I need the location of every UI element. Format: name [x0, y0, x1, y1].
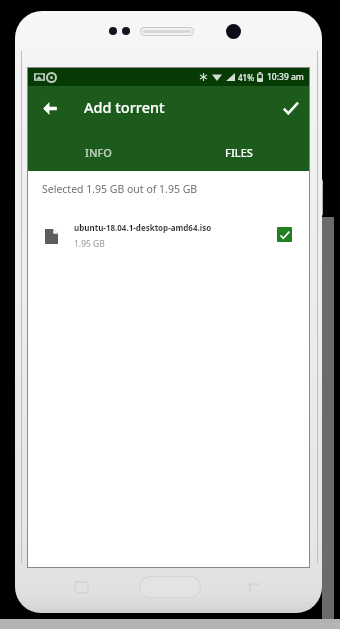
staticText: 1.95 GB — [74, 238, 105, 250]
staticText: 10:39 am — [267, 71, 304, 83]
button[interactable]: Done — [265, 88, 309, 132]
staticText: INFO — [85, 145, 112, 160]
staticText: 41% — [238, 72, 254, 83]
staticText: ubuntu-18.04.1-desktop-amd64.iso — [74, 222, 212, 233]
staticText: Selected 1.95 GB out of 1.95 GB — [42, 182, 198, 196]
button[interactable]: INFO — [28, 134, 168, 171]
staticText: Add torrent — [84, 97, 165, 117]
staticText: FILES — [225, 145, 253, 160]
button[interactable]: FILES — [168, 134, 309, 171]
button[interactable]: File selected — [277, 227, 292, 242]
button[interactable]: ubuntu-18.04.1-desktop-amd64.iso — [28, 219, 309, 253]
button[interactable]: Back — [28, 88, 72, 132]
